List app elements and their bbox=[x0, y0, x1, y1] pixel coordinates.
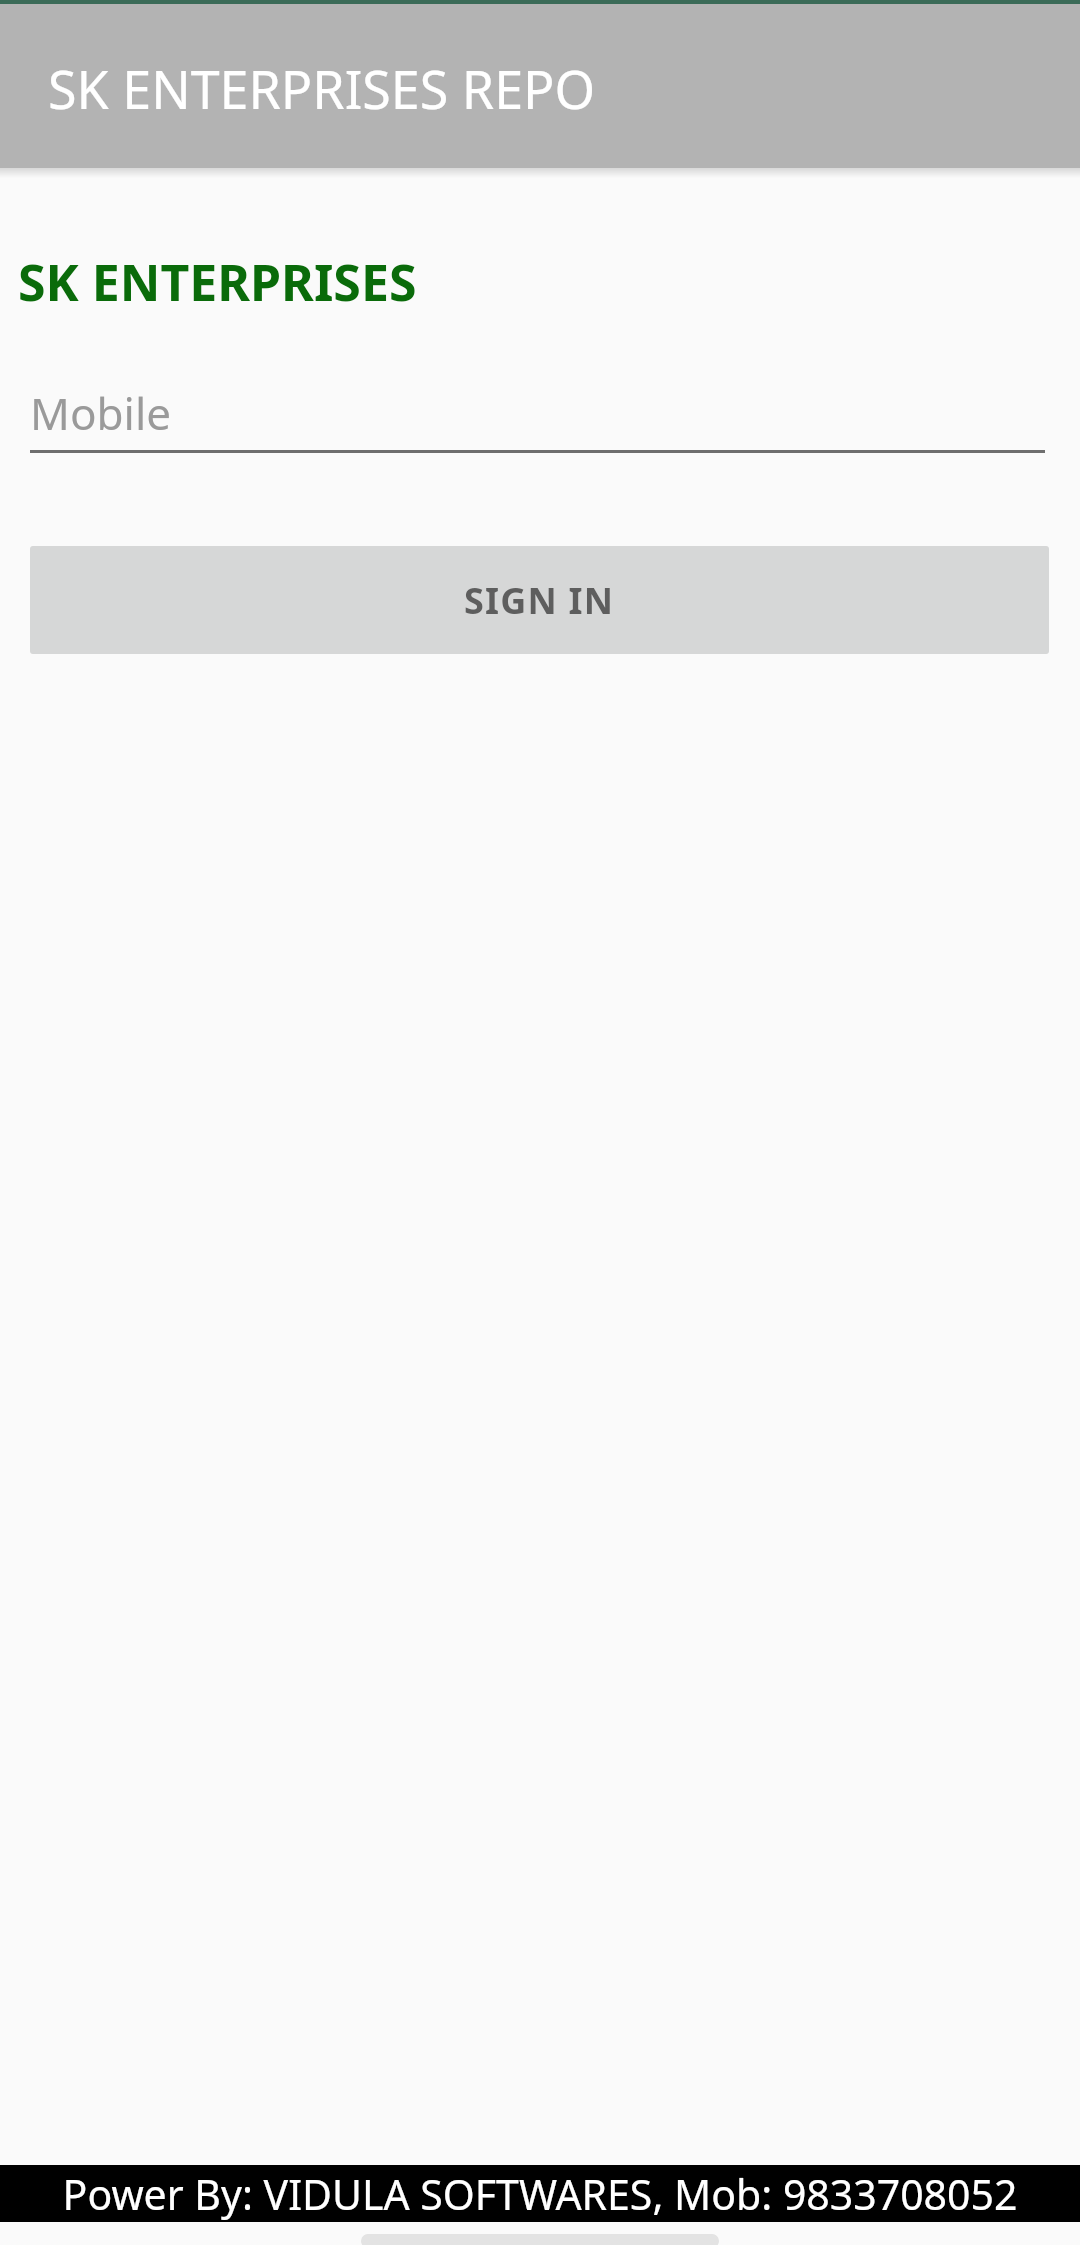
staticText: Mobile bbox=[30, 383, 172, 443]
staticText: Power By: VIDULA SOFTWARES, Mob: 9833708… bbox=[0, 2166, 1080, 2222]
button[interactable]: SIGN IN bbox=[30, 546, 1049, 654]
staticText: SK ENTERPRISES REPO bbox=[48, 53, 596, 124]
staticText: SIGN IN bbox=[464, 576, 615, 625]
staticText: SK ENTERPRISES bbox=[18, 248, 417, 316]
button[interactable]: Mobile bbox=[30, 376, 1045, 453]
